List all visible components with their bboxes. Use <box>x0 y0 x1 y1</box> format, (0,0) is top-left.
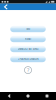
staticText: RESET <box>25 37 31 41</box>
button[interactable]: Home <box>22 92 33 100</box>
button[interactable]: Help <box>24 66 32 74</box>
staticText: TEST <box>26 27 30 31</box>
button[interactable]: CHANGE DESIGN <box>10 56 46 62</box>
button[interactable]: RESET <box>10 36 46 42</box>
staticText: DEFAULT SETTING <box>17 47 38 51</box>
staticText: ? <box>27 67 29 74</box>
button[interactable]: Back <box>3 92 14 100</box>
staticText: CHANGE DESIGN <box>17 57 38 61</box>
button[interactable]: Recent apps <box>41 92 52 100</box>
button[interactable]: TEST <box>10 26 46 32</box>
button[interactable]: DEFAULT SETTING <box>10 46 46 52</box>
button[interactable]: Back <box>1 4 10 10</box>
